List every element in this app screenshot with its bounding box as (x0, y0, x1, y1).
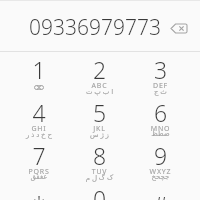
button[interactable]: 1 (9, 52, 69, 95)
staticText: 8 (69, 140, 130, 171)
button[interactable]: 3 (130, 52, 191, 95)
staticText: 9 (130, 140, 191, 171)
staticText: 7 (9, 140, 69, 171)
staticText: ح خ د ذ ر (9, 130, 69, 140)
button[interactable]: * (9, 181, 69, 200)
button[interactable]: 0 (69, 181, 130, 200)
staticText: DEF (130, 81, 191, 91)
staticText: TUV (69, 167, 130, 177)
staticText: 09336979773 (29, 13, 161, 42)
staticText: 3 (130, 54, 191, 85)
staticText: WXYZ (130, 167, 191, 177)
staticText: ضطظ (130, 130, 191, 138)
staticText: ک گ ل م (69, 173, 130, 183)
button[interactable]: Backspace (168, 17, 190, 39)
staticText: جچحخ (130, 173, 191, 181)
staticText: ABC (69, 81, 130, 91)
staticText: ث ج (130, 87, 191, 97)
staticText: 0 (69, 183, 130, 200)
staticText: 6 (130, 97, 191, 128)
staticText: JKL (69, 124, 130, 134)
staticText: GHI (9, 124, 69, 134)
staticText: PQRS (9, 167, 69, 177)
staticText: 4 (9, 97, 69, 128)
staticText: ا ب پ ت (69, 87, 130, 97)
button[interactable]: 2 (69, 52, 130, 95)
button[interactable]: 6 (130, 95, 191, 138)
button[interactable]: 4 (9, 95, 69, 138)
staticText: عغفق (9, 173, 69, 181)
button[interactable]: 5 (69, 95, 130, 138)
staticText: 1 (9, 54, 69, 85)
button[interactable]: 9 (130, 138, 191, 181)
staticText: 2 (69, 54, 130, 85)
staticText: 5 (69, 97, 130, 128)
button[interactable]: 8 (69, 138, 130, 181)
staticText: ز ژ س (69, 130, 130, 140)
staticText: MNO (130, 124, 191, 134)
staticText: * (9, 189, 69, 200)
button[interactable]: 7 (9, 138, 69, 181)
button[interactable]: # (130, 181, 191, 200)
staticText: # (130, 189, 191, 200)
